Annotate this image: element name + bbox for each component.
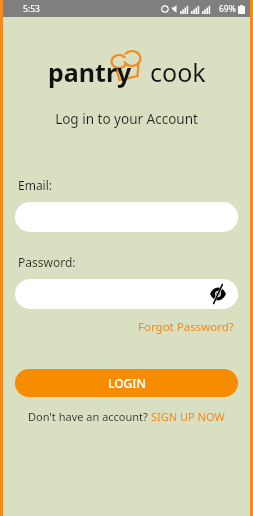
staticText: Log in to your Account xyxy=(3,110,250,128)
button[interactable] xyxy=(15,202,238,232)
staticText: cook xyxy=(150,55,206,89)
button[interactable]: Toggle password visibility xyxy=(206,282,230,306)
staticText: pantry xyxy=(48,55,132,89)
button[interactable]: Toggle password visibility xyxy=(15,279,238,309)
staticText: 5:53 xyxy=(23,3,40,15)
staticText: Password: xyxy=(18,254,76,270)
button[interactable]: LOGIN xyxy=(15,369,238,397)
staticText: Don't have an account? xyxy=(28,409,151,424)
button[interactable]: Forgot Password? xyxy=(134,317,238,337)
staticText: Email: xyxy=(18,177,53,193)
staticText: LOGIN xyxy=(108,375,146,391)
staticText: 69% xyxy=(219,3,236,15)
button[interactable]: SIGN UP NOW xyxy=(151,409,225,424)
